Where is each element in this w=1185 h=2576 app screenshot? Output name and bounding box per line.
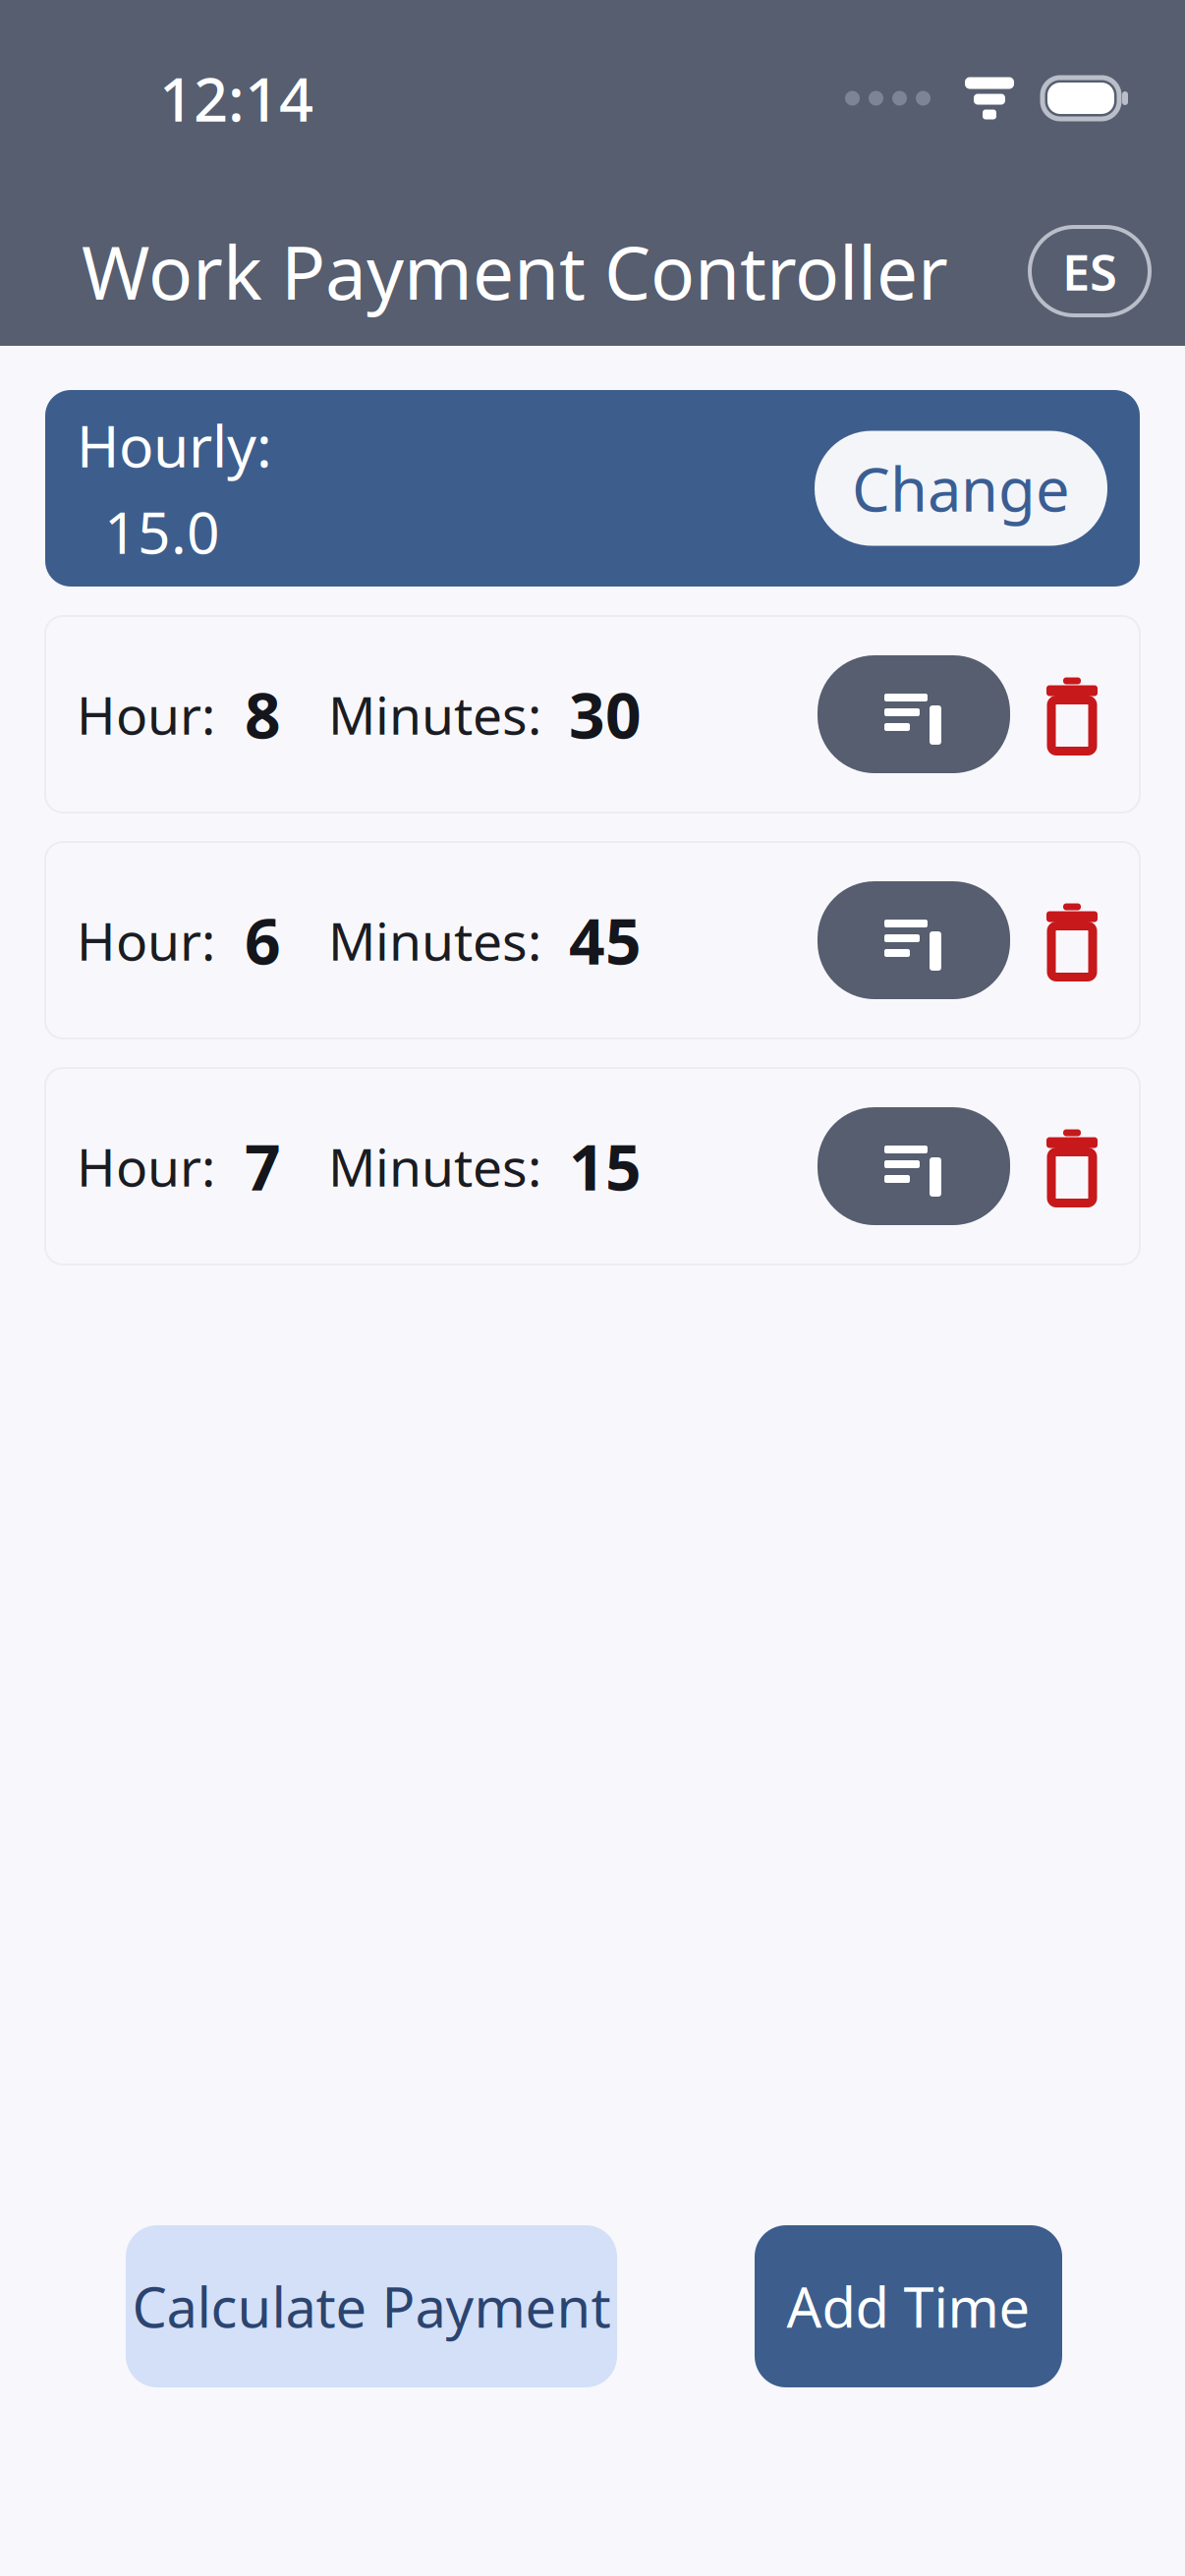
staticText: Hour: bbox=[77, 905, 215, 975]
staticText: Minutes: bbox=[328, 1131, 541, 1201]
staticText: Work Payment Controller bbox=[82, 222, 948, 320]
staticText: 12:14 bbox=[159, 58, 313, 138]
staticText: Change bbox=[852, 448, 1070, 528]
button[interactable]: Delete entry bbox=[1028, 655, 1116, 773]
staticText: 7 bbox=[245, 1124, 281, 1208]
button[interactable]: Delete entry bbox=[1028, 1107, 1116, 1225]
staticText: Hourly: bbox=[77, 407, 272, 483]
staticText: 45 bbox=[569, 898, 642, 982]
staticText: 15 bbox=[569, 1124, 642, 1208]
staticText: 8 bbox=[245, 672, 281, 756]
staticText: ES bbox=[1062, 238, 1117, 304]
button[interactable]: Add Time bbox=[755, 2225, 1062, 2387]
staticText: 6 bbox=[245, 898, 281, 982]
button[interactable]: Delete entry bbox=[1028, 881, 1116, 999]
staticText: Minutes: bbox=[328, 905, 541, 975]
staticText: 30 bbox=[569, 672, 642, 756]
staticText: Hour: bbox=[77, 1131, 215, 1201]
staticText: Calculate Payment bbox=[132, 2270, 611, 2343]
button[interactable]: Calculate Payment bbox=[126, 2225, 617, 2387]
button[interactable]: Edit entry bbox=[818, 655, 1010, 773]
button[interactable]: Change bbox=[815, 431, 1107, 546]
button[interactable]: Edit entry bbox=[818, 1107, 1010, 1225]
staticText: Add Time bbox=[787, 2270, 1030, 2343]
staticText: 15.0 bbox=[104, 493, 220, 570]
button[interactable]: Edit entry bbox=[818, 881, 1010, 999]
staticText: Minutes: bbox=[328, 679, 541, 749]
button[interactable]: Language ES bbox=[1030, 227, 1150, 315]
staticText: Hour: bbox=[77, 679, 215, 749]
